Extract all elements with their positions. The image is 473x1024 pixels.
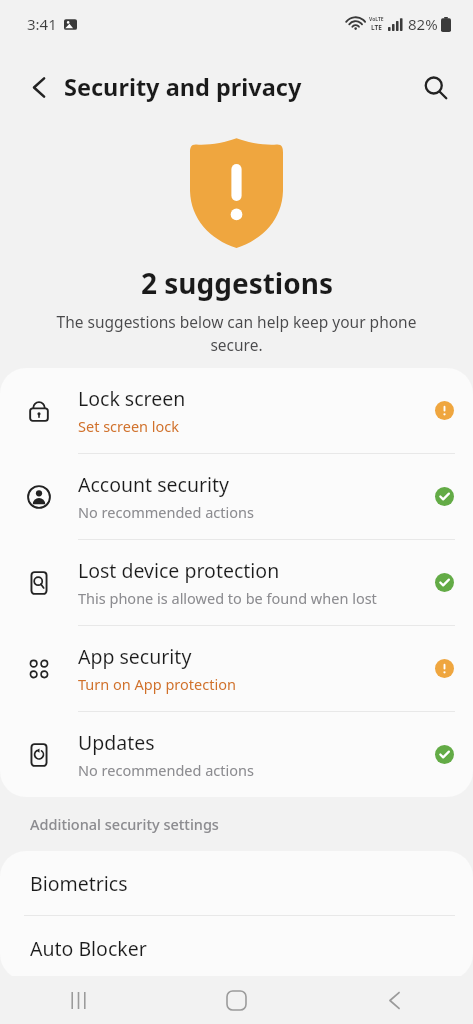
staticText: App security xyxy=(78,643,192,670)
staticText: This phone is allowed to be found when l… xyxy=(78,588,377,608)
staticText: Lost device protection xyxy=(78,557,280,584)
staticText: 82% xyxy=(408,14,438,34)
staticText: LTE xyxy=(371,23,382,32)
staticText: Turn on App protection xyxy=(78,674,236,694)
button[interactable]: Lost device protection xyxy=(0,540,473,625)
staticText: Additional security settings xyxy=(30,814,219,834)
staticText: No recommended actions xyxy=(78,502,254,522)
staticText: Account security xyxy=(78,471,230,498)
staticText: Updates xyxy=(78,729,155,756)
button[interactable]: Search xyxy=(411,63,459,111)
button[interactable]: Updates xyxy=(0,712,473,797)
button[interactable]: Back xyxy=(315,976,473,1024)
staticText: Auto Blocker xyxy=(30,935,147,962)
button[interactable]: App security xyxy=(0,626,473,711)
staticText: 2 suggestions xyxy=(141,264,333,302)
button[interactable]: Biometrics xyxy=(0,851,473,915)
staticText: Biometrics xyxy=(30,870,128,897)
button[interactable]: Auto Blocker xyxy=(0,916,473,980)
staticText: VoLTE xyxy=(369,16,384,23)
staticText: Set screen lock xyxy=(78,416,180,436)
button[interactable]: Home xyxy=(157,976,315,1024)
staticText: Security and privacy xyxy=(64,71,302,103)
staticText: Lock screen xyxy=(78,385,186,412)
button[interactable]: Recent apps xyxy=(0,976,157,1024)
staticText: The suggestions below can help keep your… xyxy=(36,311,437,356)
staticText: No recommended actions xyxy=(78,760,254,780)
button[interactable]: Lock screen xyxy=(0,368,473,453)
staticText: 3:41 xyxy=(27,14,57,34)
button[interactable]: Back xyxy=(15,63,63,111)
button[interactable]: Account security xyxy=(0,454,473,539)
